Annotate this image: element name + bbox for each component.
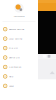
staticText: Notification [9, 66, 21, 68]
button[interactable]: 13812345678 [0, 0, 38, 21]
button[interactable]: Help [0, 72, 38, 81]
staticText: Help [9, 75, 13, 78]
staticText: Local Setting [9, 37, 22, 40]
button[interactable]: Local Setting [0, 34, 38, 43]
button[interactable]: Remote Setting [0, 24, 38, 34]
button[interactable]: File List [0, 43, 38, 53]
button[interactable]: About [0, 81, 38, 91]
button[interactable]: Notification [0, 62, 38, 72]
staticText: About [9, 84, 14, 87]
staticText: File List [9, 47, 18, 49]
staticText: Device List [9, 56, 20, 59]
staticText: 13812345678 [13, 15, 24, 18]
button[interactable]: Device List [0, 53, 38, 62]
staticText: Remote Setting [9, 28, 24, 30]
